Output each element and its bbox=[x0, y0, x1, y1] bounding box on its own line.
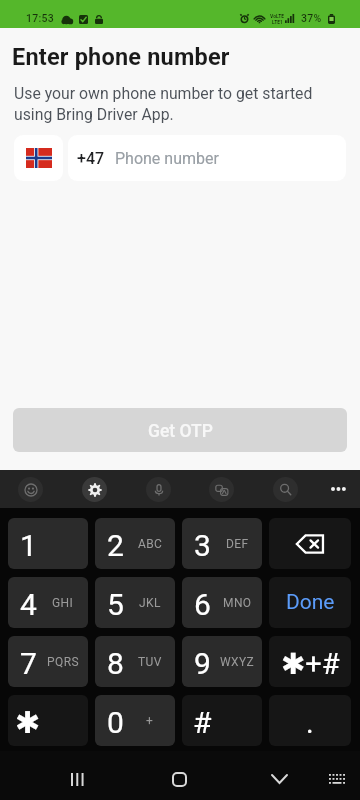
button[interactable]: Voice input bbox=[146, 477, 171, 502]
staticText: TUV bbox=[138, 655, 162, 669]
button[interactable]: 7 bbox=[8, 636, 88, 687]
staticText: 5 bbox=[107, 587, 124, 622]
button[interactable]: Recent apps bbox=[57, 759, 97, 799]
staticText: Get OTP bbox=[148, 421, 213, 442]
button[interactable]: Keyboard settings bbox=[82, 477, 107, 502]
button[interactable]: More options bbox=[323, 474, 353, 504]
button[interactable]: +47 bbox=[68, 135, 346, 181]
staticText: 2 bbox=[107, 528, 124, 563]
staticText: JKL bbox=[139, 596, 161, 610]
button[interactable]: Get OTP bbox=[13, 408, 347, 452]
button[interactable]: 5 bbox=[95, 577, 175, 628]
staticText: 1 bbox=[20, 528, 37, 563]
button[interactable]: Search bbox=[273, 477, 298, 502]
button[interactable]: 9 bbox=[182, 636, 262, 687]
staticText: ABC bbox=[138, 537, 163, 551]
button[interactable]: # bbox=[182, 695, 262, 746]
button[interactable]: Home bbox=[159, 759, 199, 799]
button[interactable]: ✱+# bbox=[269, 636, 351, 687]
button[interactable]: Change keyboard bbox=[317, 759, 357, 799]
staticText: PQRS bbox=[47, 655, 79, 669]
staticText: . bbox=[306, 706, 314, 740]
button[interactable]: 0 bbox=[95, 695, 175, 746]
button[interactable]: 1 bbox=[8, 518, 88, 569]
staticText: Enter phone number bbox=[12, 43, 230, 71]
button[interactable]: Backspace bbox=[269, 518, 351, 569]
staticText: +47 bbox=[77, 149, 105, 168]
staticText: # bbox=[193, 705, 212, 740]
button[interactable]: 3 bbox=[182, 518, 262, 569]
button[interactable]: 8 bbox=[95, 636, 175, 687]
staticText: MNO bbox=[223, 596, 252, 610]
staticText: Done bbox=[286, 590, 335, 615]
staticText: Use your own phone number to get started… bbox=[14, 84, 313, 123]
staticText: DEF bbox=[226, 537, 249, 551]
staticText: 4 bbox=[20, 587, 37, 622]
button[interactable]: 6 bbox=[182, 577, 262, 628]
staticText: ✱ bbox=[15, 705, 41, 740]
staticText: 9 bbox=[194, 646, 211, 681]
staticText: 0 bbox=[107, 705, 124, 740]
staticText: VoLTE bbox=[270, 13, 285, 19]
staticText: 8 bbox=[107, 646, 124, 681]
button[interactable]: Select country bbox=[14, 135, 63, 181]
button[interactable]: 2 bbox=[95, 518, 175, 569]
button[interactable]: Translate bbox=[209, 477, 234, 502]
staticText: GHI bbox=[52, 596, 74, 610]
button[interactable]: . bbox=[269, 695, 351, 746]
button[interactable]: Emoji bbox=[18, 477, 43, 502]
staticText: 7 bbox=[20, 646, 37, 681]
staticText: LTE1 bbox=[272, 19, 283, 25]
staticText: Phone number bbox=[115, 149, 219, 168]
staticText: 3 bbox=[194, 528, 211, 563]
staticText: + bbox=[146, 714, 154, 728]
staticText: WXYZ bbox=[220, 655, 255, 669]
staticText: 17:53 bbox=[26, 12, 55, 24]
staticText: 37% bbox=[301, 12, 322, 24]
staticText: 6 bbox=[194, 587, 211, 622]
button[interactable]: ✱ bbox=[8, 695, 88, 746]
button[interactable]: 4 bbox=[8, 577, 88, 628]
button[interactable]: Hide keyboard bbox=[259, 759, 299, 799]
button[interactable]: Done bbox=[269, 577, 351, 628]
staticText: ✱+# bbox=[281, 647, 340, 681]
